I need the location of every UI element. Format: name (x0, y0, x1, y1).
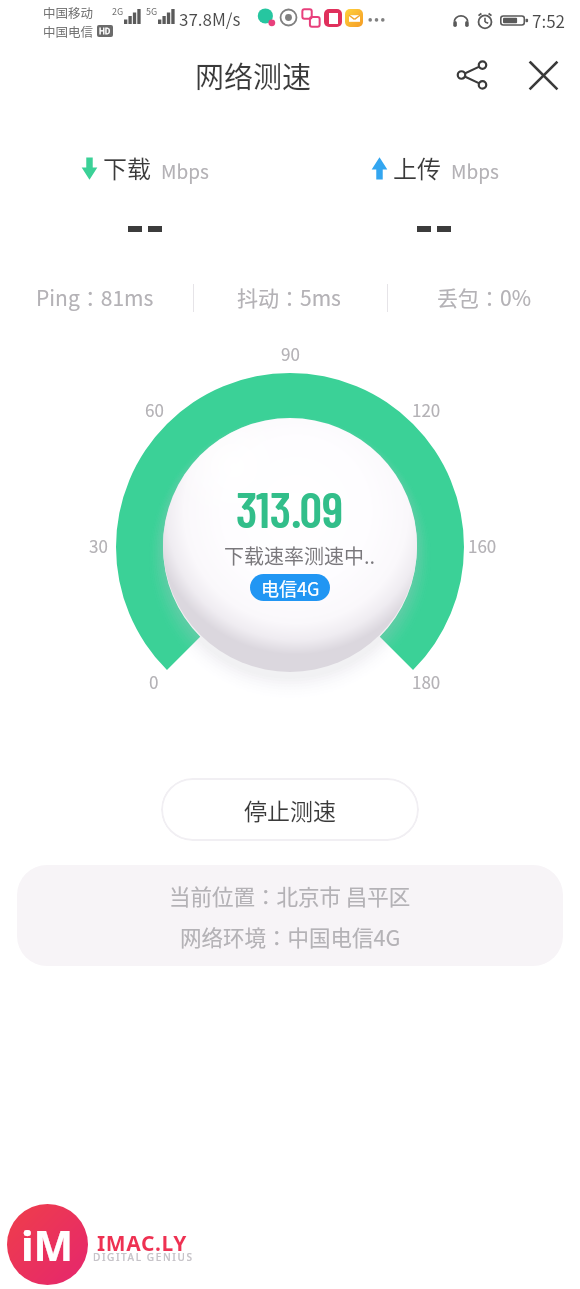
staticText: DIGITAL GENIUS (93, 1250, 194, 1264)
staticText: IMAC.LY (97, 1229, 187, 1258)
staticText: 160 (468, 533, 497, 558)
button[interactable]: 停止测速 (161, 778, 419, 841)
staticText: 90 (281, 341, 300, 366)
staticText: 2G (112, 5, 124, 18)
button[interactable]: Share (448, 51, 496, 99)
staticText: 37.8M/s (179, 6, 241, 31)
staticText: iM (21, 1216, 74, 1273)
staticText: 30 (89, 533, 108, 558)
staticText: 0 (149, 669, 159, 694)
staticText: Mbps (161, 157, 209, 185)
staticText: 120 (412, 397, 441, 422)
staticText: 下载 (103, 150, 151, 185)
staticText: 7:52 (532, 8, 566, 33)
staticText: 停止测速 (244, 793, 336, 826)
staticText: 丢包：0% (437, 282, 531, 312)
staticText: HD (99, 25, 111, 37)
staticText: 中国电信 (43, 22, 94, 40)
staticText: 313.09 (236, 478, 344, 538)
staticText: 网络环境：中国电信4G (180, 921, 401, 952)
staticText: 当前位置：北京市 昌平区 (169, 880, 411, 911)
staticText: Mbps (451, 157, 499, 185)
staticText: Ping：81ms (36, 282, 154, 312)
staticText: 中国移动 (43, 3, 94, 21)
staticText: 电信4G (261, 575, 320, 601)
staticText: 180 (412, 669, 441, 694)
staticText: 上传 (393, 150, 441, 185)
staticText: 60 (145, 397, 164, 422)
staticText: 下载速率测速中.. (224, 541, 376, 570)
button[interactable]: Close (519, 51, 567, 99)
staticText: 5G (146, 5, 158, 18)
staticText: 抖动：5ms (237, 282, 341, 312)
staticText: 网络测速 (195, 54, 312, 96)
